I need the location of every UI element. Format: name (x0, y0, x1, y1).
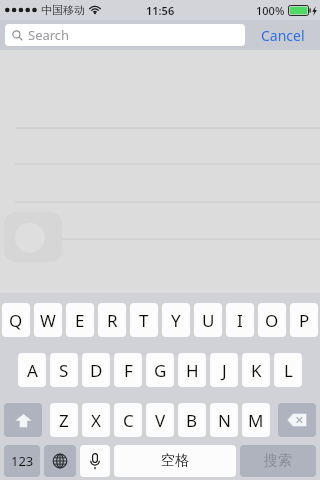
staticText: P (299, 309, 310, 332)
staticText: O (265, 309, 279, 332)
button[interactable]: V (146, 403, 174, 437)
button[interactable]: R (98, 303, 126, 337)
button[interactable]: F (114, 353, 142, 387)
button[interactable]: S (50, 353, 78, 387)
staticText: A (27, 359, 38, 382)
button[interactable]: 搜索 (240, 445, 316, 477)
staticText: Q (9, 309, 23, 332)
button[interactable]: M (242, 403, 270, 437)
staticText: J (222, 359, 227, 382)
staticText: L (284, 359, 293, 382)
button[interactable]: W (34, 303, 62, 337)
button[interactable]: E (66, 303, 94, 337)
staticText: X (91, 409, 101, 432)
button[interactable]: U (194, 303, 222, 337)
staticText: G (154, 359, 167, 382)
button[interactable]: Cancel (245, 20, 320, 50)
button[interactable]: A (18, 353, 46, 387)
staticText: T (139, 309, 149, 332)
button[interactable]: K (242, 353, 270, 387)
button[interactable]: Shift (4, 403, 42, 437)
button[interactable]: Q (2, 303, 30, 337)
staticText: Cancel (261, 26, 305, 45)
staticText: 搜索 (264, 452, 292, 470)
staticText: F (124, 359, 133, 382)
button[interactable]: Search (5, 24, 245, 46)
staticText: R (107, 309, 118, 332)
staticText: B (186, 409, 198, 432)
button[interactable]: L (274, 353, 302, 387)
staticText: 100% (256, 3, 285, 18)
button[interactable]: N (210, 403, 238, 437)
staticText: I (237, 309, 243, 332)
staticText: K (251, 359, 262, 382)
button[interactable]: I (226, 303, 254, 337)
staticText: Search (28, 26, 70, 44)
button[interactable]: X (82, 403, 110, 437)
staticText: W (40, 309, 56, 332)
staticText: N (218, 409, 231, 432)
button[interactable]: B (178, 403, 206, 437)
staticText: Z (59, 409, 69, 432)
staticText: V (155, 409, 166, 432)
staticText: D (90, 359, 103, 382)
button[interactable]: O (258, 303, 286, 337)
button[interactable]: J (210, 353, 238, 387)
button[interactable]: C (114, 403, 142, 437)
staticText: E (75, 309, 85, 332)
button[interactable]: D (82, 353, 110, 387)
button[interactable]: P (290, 303, 318, 337)
staticText: Y (171, 309, 181, 332)
button[interactable]: 123 (4, 445, 40, 477)
staticText: 中国移动 (41, 3, 85, 17)
button[interactable]: H (178, 353, 206, 387)
staticText: 11:56 (146, 3, 175, 18)
staticText: S (59, 359, 69, 382)
button[interactable]: Delete (278, 403, 316, 437)
staticText: M (248, 409, 264, 432)
button[interactable]: 空格 (114, 445, 236, 477)
staticText: H (186, 359, 199, 382)
button[interactable]: T (130, 303, 158, 337)
staticText: U (202, 309, 215, 332)
button[interactable]: Dictate (80, 445, 110, 477)
staticText: C (123, 409, 134, 432)
button[interactable]: Z (50, 403, 78, 437)
button[interactable]: Change keyboard (44, 445, 76, 477)
button[interactable]: G (146, 353, 174, 387)
staticText: 123 (11, 452, 34, 470)
staticText: 空格 (161, 452, 189, 470)
button[interactable]: Y (162, 303, 190, 337)
